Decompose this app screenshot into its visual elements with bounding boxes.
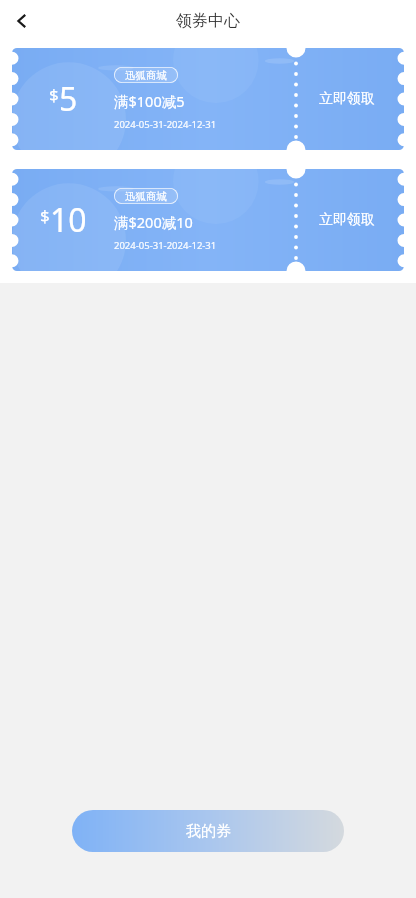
button[interactable]: 立即领取: [290, 169, 404, 271]
button[interactable]: 立即领取: [290, 48, 404, 150]
staticText: 我的券: [186, 822, 231, 841]
staticText: 满$100减5: [114, 91, 185, 111]
button[interactable]: $: [12, 48, 404, 150]
staticText: 5: [59, 77, 78, 121]
staticText: 迅狐商城: [125, 69, 167, 82]
staticText: 领券中心: [176, 11, 240, 31]
staticText: 2024-05-31-2024-12-31: [114, 118, 217, 131]
button[interactable]: $: [12, 169, 404, 271]
staticText: $: [49, 83, 59, 106]
button[interactable]: Back: [0, 0, 44, 41]
staticText: 立即领取: [319, 90, 375, 108]
staticText: 满$200减10: [114, 212, 193, 232]
staticText: 迅狐商城: [125, 190, 167, 203]
staticText: 2024-05-31-2024-12-31: [114, 239, 217, 252]
staticText: 立即领取: [319, 211, 375, 229]
button[interactable]: 我的券: [72, 810, 344, 852]
staticText: 10: [50, 198, 87, 242]
staticText: $: [40, 204, 50, 227]
